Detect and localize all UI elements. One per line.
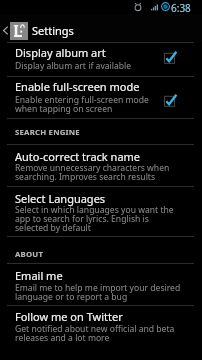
staticText: Display album art if available: [15, 60, 132, 72]
staticText: Select Languages: [15, 191, 106, 206]
staticText: Follow me on Twitter: [15, 309, 123, 324]
staticText: Remove unnecessary characters when searc…: [15, 162, 170, 183]
button[interactable]: Display album art: [0, 43, 202, 76]
staticText: Email me to help me import your desired …: [15, 282, 181, 303]
staticText: 6:38: [171, 1, 191, 15]
button[interactable]: Auto-correct track name: [0, 145, 202, 186]
staticText: Get notified about new official and beta…: [15, 323, 175, 344]
staticText: ABOUT: [15, 249, 44, 260]
staticText: Auto-correct track name: [15, 149, 141, 164]
staticText: Select in which languages you want the a…: [15, 204, 174, 234]
staticText: Display album art: [15, 45, 106, 60]
button[interactable]: Toggle option: [164, 93, 184, 111]
button[interactable]: Select Languages: [0, 187, 202, 236]
staticText: Enable entering full-screen mode when ta…: [15, 94, 149, 115]
button[interactable]: Follow me on Twitter: [0, 306, 202, 351]
button[interactable]: Toggle option: [164, 50, 184, 68]
button[interactable]: Email me: [0, 264, 202, 305]
button[interactable]: Enable full-screen mode: [0, 77, 202, 118]
staticText: SEARCH ENGINE: [15, 127, 80, 138]
staticText: Settings: [32, 23, 74, 38]
staticText: Email me: [15, 268, 63, 283]
staticText: Enable full-screen mode: [15, 79, 140, 94]
button[interactable]: Navigate up: [1, 22, 10, 38]
